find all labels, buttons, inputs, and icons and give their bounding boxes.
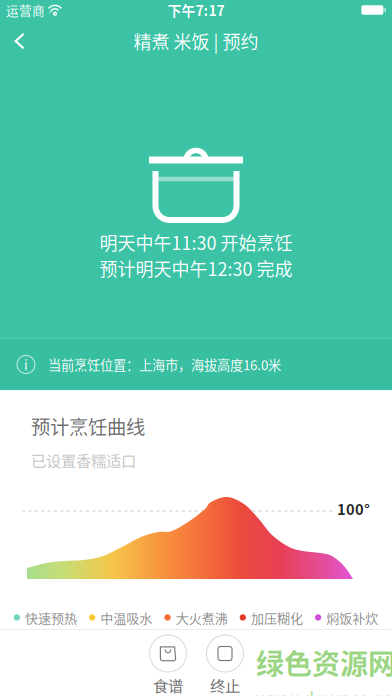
staticText: 加压糊化 [251, 608, 303, 627]
staticText: 绿色资源网 [256, 642, 392, 682]
staticText: www.downcc.com [256, 684, 392, 696]
staticText: 焖饭补炊 [326, 608, 378, 627]
staticText: 明天中午11:30 开始烹饪 [99, 229, 292, 255]
button[interactable]: Back [0, 20, 39, 61]
staticText: 运营商 [6, 1, 45, 19]
staticText: i [24, 355, 28, 374]
staticText: 食谱 [153, 674, 183, 696]
staticText: 预计烹饪曲线 [31, 412, 145, 440]
staticText: 大火煮沸 [176, 608, 228, 627]
staticText: 下午7:17 [167, 0, 224, 20]
staticText: 已设置香糯适口 [31, 449, 136, 471]
button[interactable]: 终止 [206, 635, 243, 696]
staticText: 终止 [210, 674, 240, 696]
button[interactable]: 食谱 [149, 635, 186, 696]
staticText: 中温吸水 [100, 608, 152, 627]
staticText: 当前烹饪位置：上海市，海拔高度16.0米 [48, 355, 281, 374]
staticText: 快速预热 [25, 608, 77, 627]
staticText: 100° [337, 498, 370, 519]
staticText: 预计明天中午12:30 完成 [99, 255, 292, 281]
staticText: 精煮 米饭 | 预约 [133, 28, 258, 54]
